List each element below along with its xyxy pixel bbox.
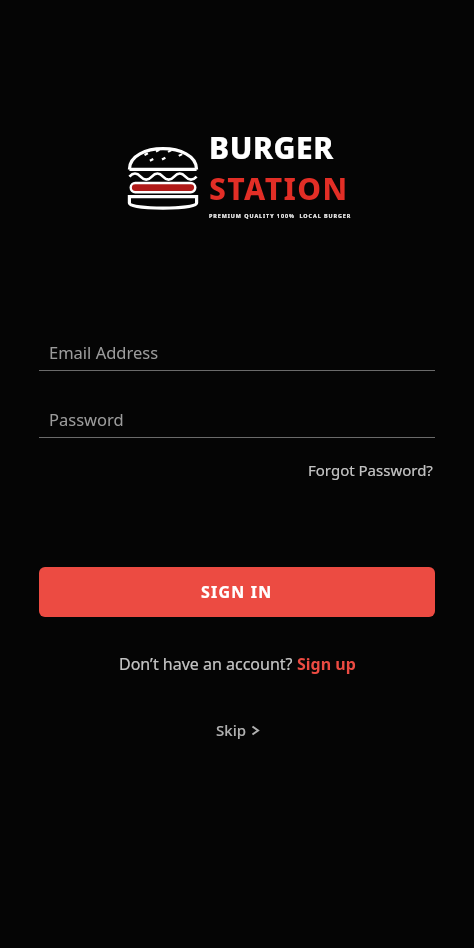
staticText: Forgot Password? <box>308 460 433 480</box>
staticText: Password <box>49 408 124 430</box>
staticText: Skip <box>216 720 246 740</box>
staticText: PREMIUM QUALITY 100% LOCAL BURGER <box>209 212 352 219</box>
button[interactable]: Email Address <box>39 334 435 371</box>
staticText: SIGN IN <box>201 581 273 603</box>
button[interactable]: Forgot Password? <box>306 456 435 484</box>
other: Burger Station logo <box>123 133 203 213</box>
staticText: STATION <box>209 168 349 209</box>
staticText: Don’t have an account? <box>119 653 297 675</box>
button[interactable]: SIGN IN <box>39 567 435 617</box>
button[interactable]: Skip <box>206 715 269 745</box>
staticText: BURGER <box>209 127 334 168</box>
staticText: Email Address <box>49 341 159 363</box>
staticText: Sign up <box>297 653 356 675</box>
button[interactable]: Sign up <box>297 653 356 675</box>
button[interactable]: Password <box>39 401 435 438</box>
